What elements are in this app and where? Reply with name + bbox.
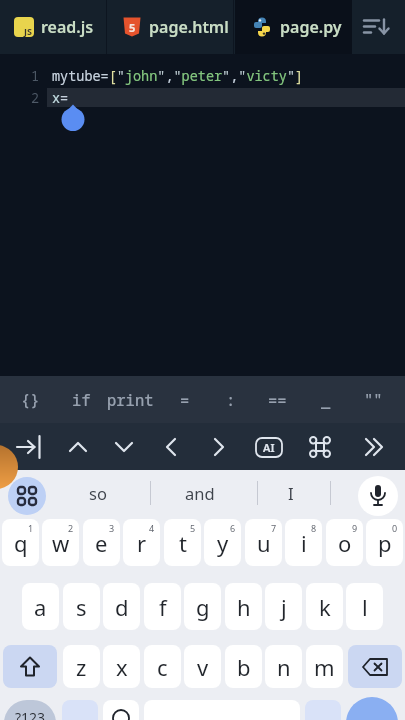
staticText: q bbox=[14, 528, 28, 558]
button[interactable]: I bbox=[255, 470, 327, 516]
button[interactable]: 5 bbox=[107, 0, 233, 54]
button[interactable]: z bbox=[63, 645, 100, 688]
staticText: a bbox=[34, 592, 47, 622]
staticText: if bbox=[72, 389, 91, 410]
button[interactable]: g bbox=[184, 583, 221, 630]
staticText: so bbox=[89, 482, 107, 504]
button[interactable]: y bbox=[204, 519, 241, 566]
button[interactable] bbox=[58, 424, 98, 470]
staticText: and bbox=[185, 482, 215, 504]
staticText: n bbox=[277, 652, 291, 682]
button[interactable]: AI bbox=[253, 423, 285, 470]
button[interactable]: e bbox=[83, 519, 120, 566]
button[interactable]: "" bbox=[349, 376, 397, 423]
button[interactable] bbox=[354, 423, 394, 470]
staticText: page.py bbox=[280, 16, 342, 38]
staticText: j bbox=[281, 592, 287, 622]
button[interactable]: p bbox=[366, 519, 403, 566]
button[interactable]: d bbox=[103, 583, 140, 630]
button[interactable]: if bbox=[57, 376, 105, 423]
button[interactable]: n bbox=[265, 645, 302, 688]
staticText: d bbox=[115, 592, 129, 622]
button[interactable]: page.py bbox=[235, 0, 352, 54]
button[interactable] bbox=[104, 424, 144, 470]
button[interactable]: q bbox=[2, 519, 39, 566]
button[interactable]: : bbox=[207, 376, 255, 423]
staticText: 0 bbox=[392, 522, 398, 534]
button[interactable] bbox=[3, 645, 57, 688]
staticText: print bbox=[107, 389, 154, 410]
button[interactable] bbox=[305, 700, 341, 720]
staticText: k bbox=[319, 592, 331, 622]
button[interactable] bbox=[103, 700, 139, 720]
button[interactable]: w bbox=[42, 519, 79, 566]
button[interactable]: j bbox=[265, 583, 302, 630]
button[interactable]: h bbox=[225, 583, 262, 630]
staticText: AI bbox=[263, 440, 275, 455]
button[interactable]: o bbox=[326, 519, 363, 566]
staticText: 5 bbox=[190, 522, 196, 534]
button[interactable] bbox=[358, 476, 398, 516]
button[interactable]: t bbox=[164, 519, 201, 566]
button[interactable]: c bbox=[144, 645, 181, 688]
staticText: b bbox=[237, 652, 251, 682]
staticText: c bbox=[157, 652, 168, 682]
staticText: _ bbox=[321, 389, 331, 410]
button[interactable]: k bbox=[306, 583, 343, 630]
staticText: "" bbox=[364, 389, 383, 410]
staticText: {} bbox=[21, 389, 40, 410]
button[interactable]: so bbox=[62, 470, 134, 516]
button[interactable] bbox=[352, 0, 400, 54]
button[interactable] bbox=[300, 423, 340, 470]
button[interactable]: r bbox=[123, 519, 160, 566]
staticText: 7 bbox=[271, 522, 277, 534]
button[interactable]: = bbox=[161, 376, 209, 423]
staticText: ?123 bbox=[15, 708, 46, 720]
staticText: read.js bbox=[41, 16, 94, 38]
button[interactable]: ?123 bbox=[4, 700, 56, 720]
staticText: p bbox=[378, 528, 392, 558]
staticText: o bbox=[338, 528, 352, 558]
staticText: 2 bbox=[31, 89, 40, 107]
staticText: 9 bbox=[352, 522, 358, 534]
button[interactable] bbox=[8, 423, 52, 470]
button[interactable]: print bbox=[106, 376, 154, 423]
button[interactable]: _ bbox=[302, 376, 350, 423]
button[interactable]: JS bbox=[0, 0, 106, 54]
staticText: g bbox=[196, 592, 210, 622]
button[interactable] bbox=[346, 697, 398, 720]
button[interactable]: and bbox=[164, 470, 236, 516]
button[interactable]: b bbox=[225, 645, 262, 688]
button[interactable] bbox=[348, 645, 402, 688]
staticText: h bbox=[237, 592, 251, 622]
button[interactable]: a bbox=[22, 583, 59, 630]
button[interactable]: i bbox=[285, 519, 322, 566]
staticText: v bbox=[197, 652, 209, 682]
staticText: f bbox=[159, 592, 167, 622]
button[interactable]: == bbox=[253, 376, 301, 423]
staticText: e bbox=[95, 528, 108, 558]
staticText: u bbox=[257, 528, 271, 558]
staticText: r bbox=[137, 528, 147, 558]
button[interactable] bbox=[151, 424, 191, 470]
button[interactable]: f bbox=[144, 583, 181, 630]
button[interactable] bbox=[0, 445, 18, 489]
button[interactable]: s bbox=[63, 583, 100, 630]
staticText: I bbox=[288, 482, 294, 504]
button[interactable] bbox=[199, 424, 239, 470]
staticText: 8 bbox=[311, 522, 317, 534]
button[interactable]: x bbox=[103, 645, 140, 688]
button[interactable]: l bbox=[346, 583, 383, 630]
staticText: = bbox=[180, 389, 190, 410]
staticText: 4 bbox=[149, 522, 155, 534]
button[interactable]: u bbox=[245, 519, 282, 566]
staticText: y bbox=[217, 528, 229, 558]
button[interactable]: {} bbox=[6, 376, 54, 423]
staticText: i bbox=[301, 528, 307, 558]
staticText: s bbox=[76, 592, 87, 622]
button[interactable] bbox=[62, 700, 98, 720]
button[interactable]: m bbox=[306, 645, 343, 688]
button[interactable]: v bbox=[184, 645, 221, 688]
button[interactable] bbox=[8, 477, 46, 515]
